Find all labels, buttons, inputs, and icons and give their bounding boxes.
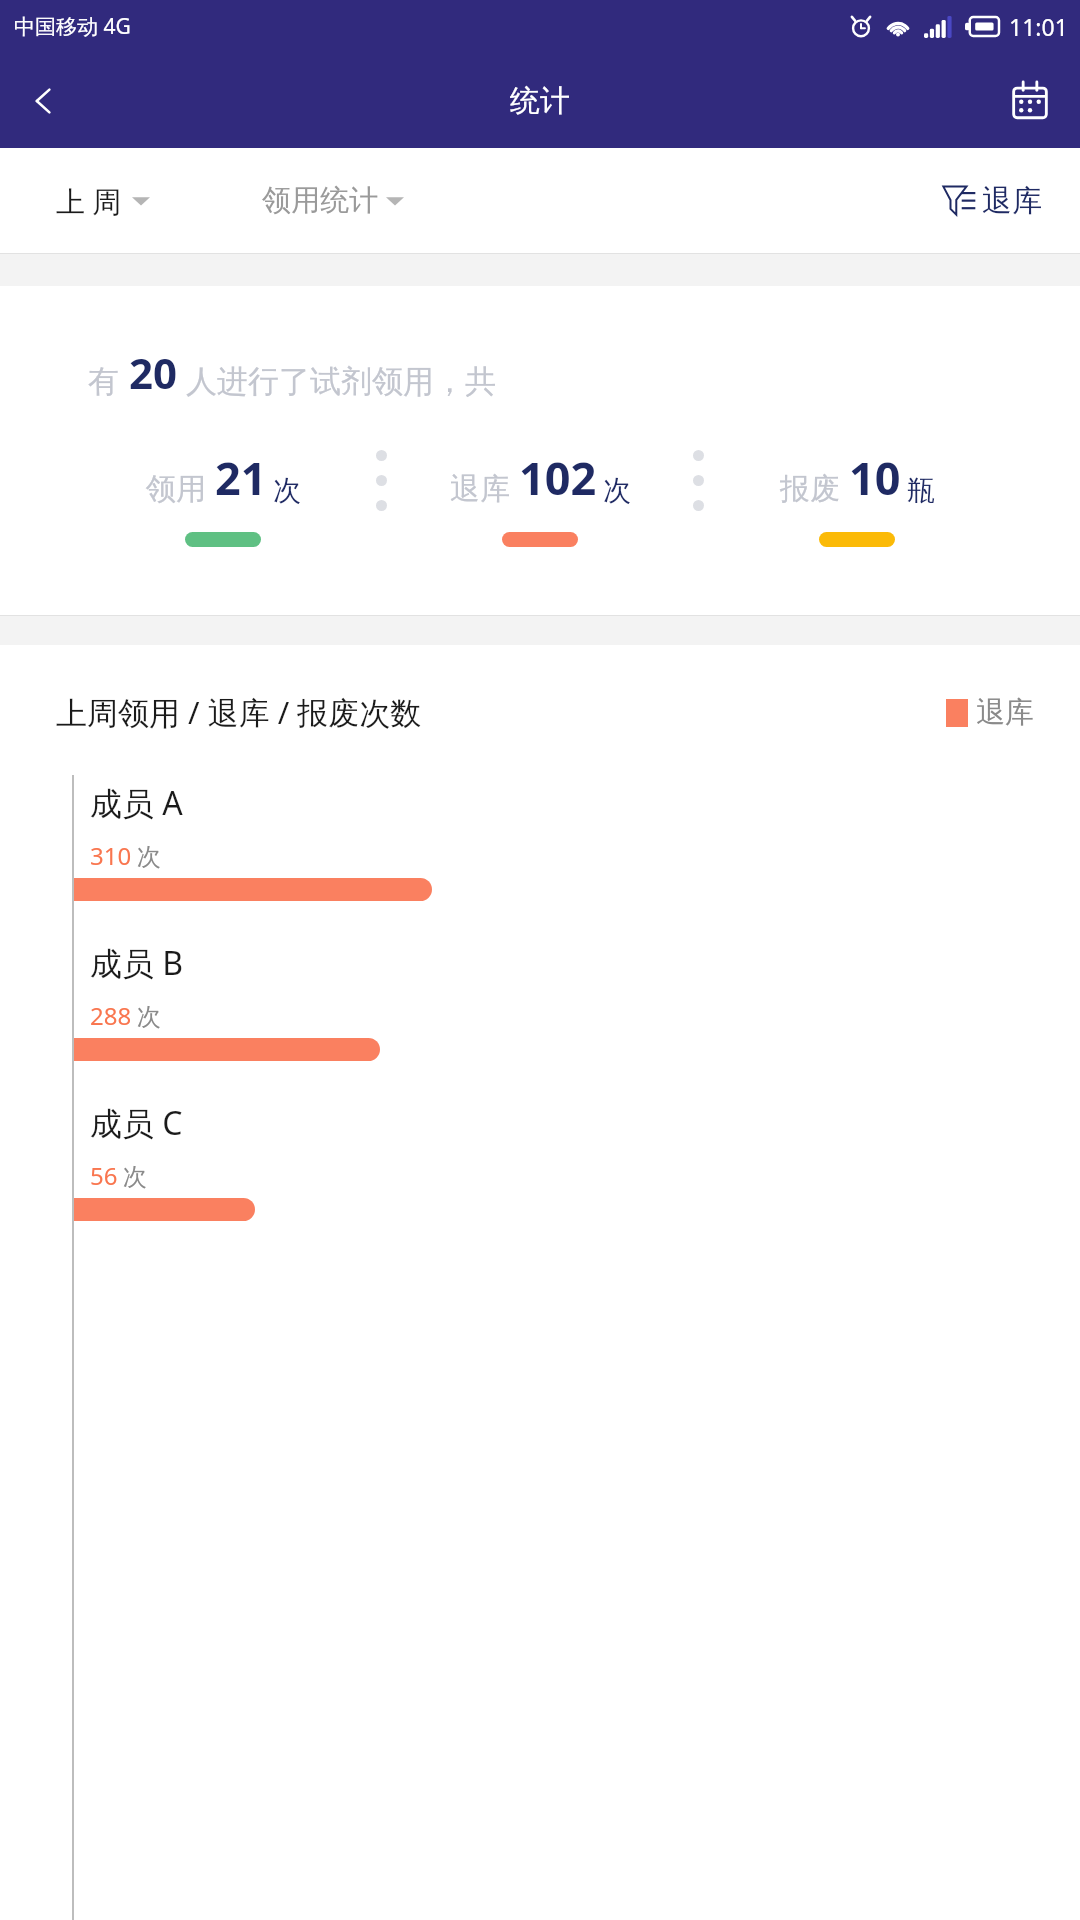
staticText: 310	[90, 839, 132, 872]
button[interactable]: 领用	[70, 447, 376, 547]
button[interactable]: 上 周	[56, 181, 150, 221]
button[interactable]: Back	[8, 65, 80, 137]
staticText: 次	[273, 473, 301, 508]
button[interactable]: Calendar	[996, 67, 1064, 135]
staticText: 有	[88, 362, 119, 401]
staticText: 次	[603, 473, 631, 508]
button[interactable]: 退库	[942, 182, 1042, 220]
staticText: 次	[123, 1162, 147, 1192]
staticText: 领用统计	[262, 182, 378, 219]
staticText: 瓶	[907, 473, 935, 508]
button[interactable]: 成员 B	[74, 935, 1080, 1061]
staticText: 统计	[510, 82, 570, 120]
staticText: 11:01	[1009, 11, 1068, 42]
staticText: 上 周	[56, 181, 122, 221]
staticText: 成员 B	[90, 941, 184, 985]
staticText: 退库	[976, 694, 1034, 731]
staticText: 成员 C	[90, 1101, 183, 1145]
staticText: 人进行了试剂领用，共	[186, 362, 496, 401]
staticText: 次	[137, 1002, 161, 1032]
staticText: 10	[849, 447, 901, 508]
staticText: 102	[519, 447, 597, 508]
staticText: 次	[137, 842, 161, 872]
staticText: 领用	[146, 470, 206, 508]
staticText: 退库	[450, 470, 510, 508]
button[interactable]: 成员 A	[74, 775, 1080, 901]
staticText: 报废	[780, 470, 840, 508]
staticText: 56	[90, 1159, 118, 1192]
staticText: 20	[129, 344, 178, 401]
staticText: 上周领用 / 退库 / 报废次数	[56, 691, 422, 733]
staticText: 288	[90, 999, 132, 1032]
button[interactable]: 退库	[387, 447, 693, 547]
staticText: 成员 A	[90, 781, 183, 825]
button[interactable]: 报废	[704, 447, 1010, 547]
staticText: 退库	[982, 182, 1042, 220]
button[interactable]: 成员 C	[74, 1095, 1080, 1221]
button[interactable]: 退库	[946, 694, 1034, 731]
staticText: 21	[215, 447, 267, 508]
button[interactable]: 领用统计	[262, 182, 404, 219]
staticText: 中国移动 4G	[14, 12, 131, 41]
